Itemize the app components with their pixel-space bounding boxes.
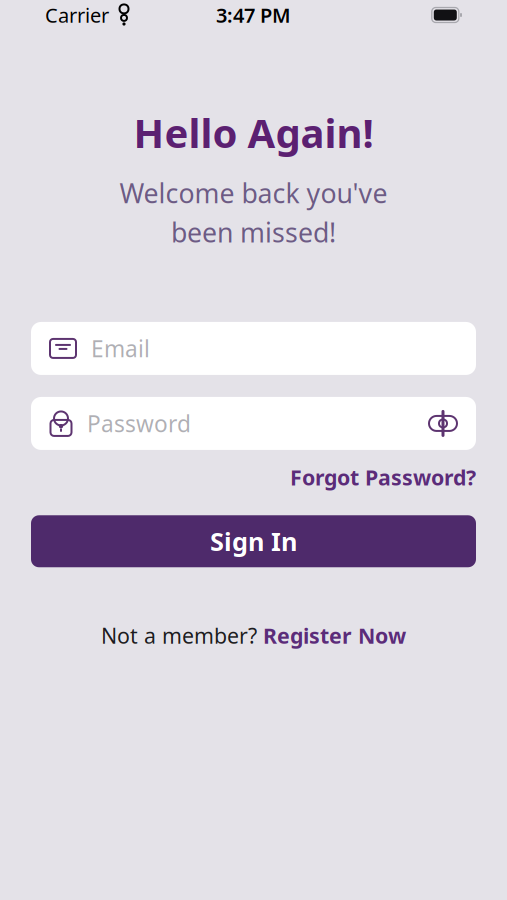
staticText: Not a member? bbox=[101, 621, 257, 650]
button[interactable]: Register Now bbox=[263, 621, 406, 650]
staticText: Welcome back you've bbox=[119, 175, 387, 210]
staticText: Register Now bbox=[263, 621, 406, 650]
staticText: Sign In bbox=[210, 524, 297, 558]
button[interactable]: Email bbox=[31, 322, 476, 375]
staticText: Carrier bbox=[45, 2, 109, 28]
staticText: been missed! bbox=[171, 214, 336, 250]
staticText: Hello Again! bbox=[133, 106, 373, 159]
button[interactable]: Sign In bbox=[31, 515, 476, 567]
staticText: Email bbox=[91, 333, 150, 363]
button[interactable]: Password bbox=[31, 397, 476, 450]
staticText: Forgot Password? bbox=[290, 463, 476, 491]
button[interactable]: Forgot Password? bbox=[290, 463, 476, 491]
staticText: 3:47 PM bbox=[216, 2, 291, 28]
staticText: Password bbox=[87, 408, 191, 438]
